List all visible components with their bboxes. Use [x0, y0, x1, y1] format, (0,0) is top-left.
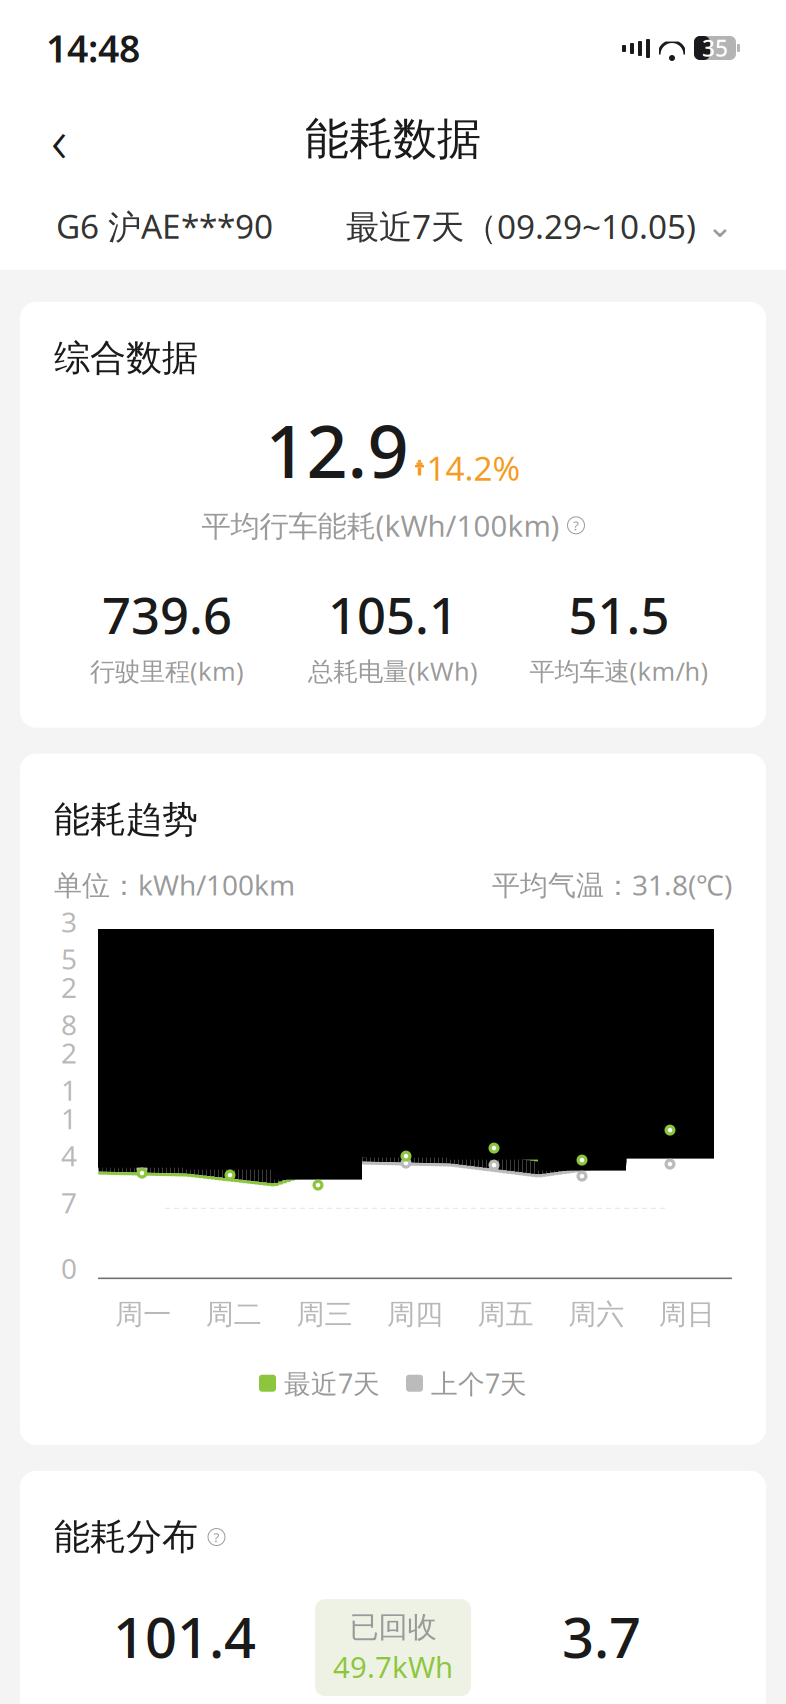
staticText: 49.7kWh [333, 1647, 453, 1686]
staticText: ? [213, 1528, 219, 1546]
staticText: 平均行车能耗(kWh/100km) [201, 506, 559, 545]
staticText: 总耗电量(kWh) [308, 654, 478, 688]
staticText: 最近7天 [284, 1365, 380, 1401]
staticText: ⌄ [706, 208, 733, 244]
staticText: 35 [702, 33, 728, 63]
staticText: 行驶里程(km) [90, 654, 244, 688]
staticText: 已回收 [349, 1609, 436, 1645]
staticText: 能耗数据 [305, 112, 481, 166]
staticText: 能耗趋势 [54, 798, 198, 842]
staticText: 12.9 [265, 402, 408, 498]
button[interactable]: Back [32, 112, 86, 166]
staticText: 3.7 [562, 1599, 641, 1673]
staticText: 周五 [478, 1297, 534, 1331]
staticText: G6 沪AE***90 [56, 204, 273, 248]
staticText: 周日 [659, 1297, 715, 1331]
button[interactable]: 平均行车能耗(kWh/100km) [201, 506, 584, 545]
staticText: 周一 [115, 1297, 171, 1331]
staticText: 周三 [296, 1297, 352, 1331]
staticText: 14 [61, 1100, 77, 1174]
staticText: 上个7天 [431, 1365, 527, 1401]
staticText: 能耗分布 [54, 1515, 198, 1559]
staticText: 14.2% [426, 446, 520, 490]
staticText: 单位：kWh/100km [54, 866, 295, 903]
staticText: 105.1 [328, 581, 458, 648]
staticText: 综合数据 [54, 336, 198, 380]
staticText: ‹ [51, 98, 67, 180]
staticText: 28 [61, 968, 77, 1043]
staticText: 周二 [206, 1297, 262, 1331]
staticText: ? [573, 516, 579, 534]
staticText: 平均车速(km/h) [529, 654, 708, 688]
staticText: 14:48 [46, 23, 140, 73]
staticText: 最近7天（09.29~10.05) [346, 204, 696, 248]
staticText: 51.5 [568, 581, 669, 648]
button[interactable]: 最近7天（09.29~10.05) [346, 204, 730, 248]
staticText: 周四 [387, 1297, 443, 1331]
staticText: 21 [61, 1034, 77, 1108]
staticText: 101.4 [113, 1599, 256, 1673]
staticText: 平均气温：31.8(℃) [492, 866, 732, 903]
staticText: 739.6 [102, 581, 232, 648]
staticText: 周六 [568, 1297, 624, 1331]
staticText: 7 [61, 1184, 77, 1221]
button[interactable]: 关于能耗分布 [208, 1528, 225, 1545]
staticText: 0 [61, 1249, 77, 1287]
staticText: 35 [61, 903, 77, 977]
